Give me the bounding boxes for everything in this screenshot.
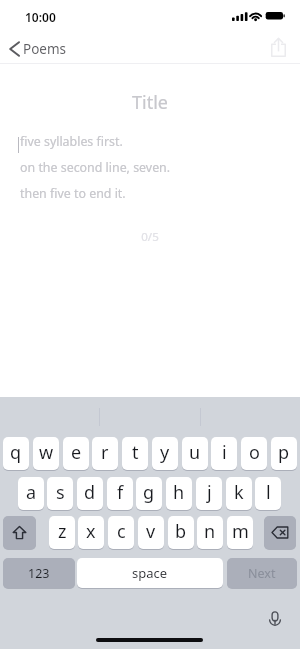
staticText: g: [143, 480, 155, 505]
staticText: l: [266, 480, 271, 505]
button[interactable]: Next: [227, 558, 297, 588]
staticText: b: [175, 519, 187, 544]
button[interactable]: d: [77, 477, 103, 510]
staticText: f: [117, 480, 124, 505]
staticText: on the second line, seven.: [20, 159, 171, 176]
button[interactable]: c: [108, 516, 134, 549]
button[interactable]: 123: [3, 558, 75, 588]
staticText: x: [86, 519, 96, 544]
button[interactable]: q: [3, 437, 29, 470]
staticText: 10:00: [25, 9, 56, 25]
button[interactable]: k: [226, 477, 252, 510]
staticText: r: [101, 440, 109, 465]
staticText: i: [222, 440, 227, 465]
button[interactable]: j: [196, 477, 222, 510]
staticText: d: [84, 480, 96, 505]
staticText: 123: [28, 565, 50, 582]
staticText: Next: [248, 565, 276, 582]
button[interactable]: b: [168, 516, 194, 549]
staticText: w: [39, 440, 54, 465]
button[interactable]: z: [49, 516, 75, 549]
button[interactable]: l: [255, 477, 281, 510]
staticText: a: [26, 480, 37, 505]
staticText: y: [160, 440, 170, 465]
button[interactable]: i: [211, 437, 237, 470]
button[interactable]: Poems: [9, 37, 67, 61]
button[interactable]: Backspace: [264, 516, 296, 549]
staticText: five syllables first.: [20, 133, 123, 150]
button[interactable]: x: [78, 516, 104, 549]
button[interactable]: space: [77, 558, 223, 588]
staticText: k: [234, 480, 244, 505]
staticText: n: [204, 519, 216, 544]
staticText: q: [10, 440, 22, 465]
staticText: c: [117, 519, 126, 544]
button[interactable]: f: [107, 477, 133, 510]
button[interactable]: e: [63, 437, 89, 470]
button[interactable]: s: [47, 477, 73, 510]
button[interactable]: v: [138, 516, 164, 549]
button[interactable]: Share: [265, 34, 291, 60]
staticText: h: [173, 480, 185, 505]
button[interactable]: w: [33, 437, 59, 470]
staticText: v: [146, 519, 156, 544]
button[interactable]: p: [271, 437, 297, 470]
staticText: s: [56, 480, 65, 505]
button[interactable]: n: [197, 516, 223, 549]
button[interactable]: t: [122, 437, 148, 470]
button[interactable]: u: [182, 437, 208, 470]
button[interactable]: m: [227, 516, 253, 549]
button[interactable]: a: [18, 477, 44, 510]
staticText: o: [249, 440, 260, 465]
button[interactable]: r: [92, 437, 118, 470]
staticText: space: [132, 564, 168, 582]
staticText: e: [71, 440, 82, 465]
staticText: then five to end it.: [20, 185, 126, 202]
staticText: Poems: [23, 40, 67, 58]
staticText: u: [189, 440, 201, 465]
staticText: p: [278, 440, 290, 465]
button[interactable]: y: [152, 437, 178, 470]
staticText: Title: [0, 90, 300, 115]
staticText: t: [132, 440, 139, 465]
button[interactable]: Shift: [3, 516, 36, 549]
staticText: z: [58, 519, 67, 544]
staticText: m: [232, 519, 249, 544]
button[interactable]: g: [136, 477, 162, 510]
staticText: j: [207, 480, 212, 505]
button[interactable]: o: [241, 437, 267, 470]
button[interactable]: Dictation: [265, 609, 285, 629]
button[interactable]: h: [166, 477, 192, 510]
